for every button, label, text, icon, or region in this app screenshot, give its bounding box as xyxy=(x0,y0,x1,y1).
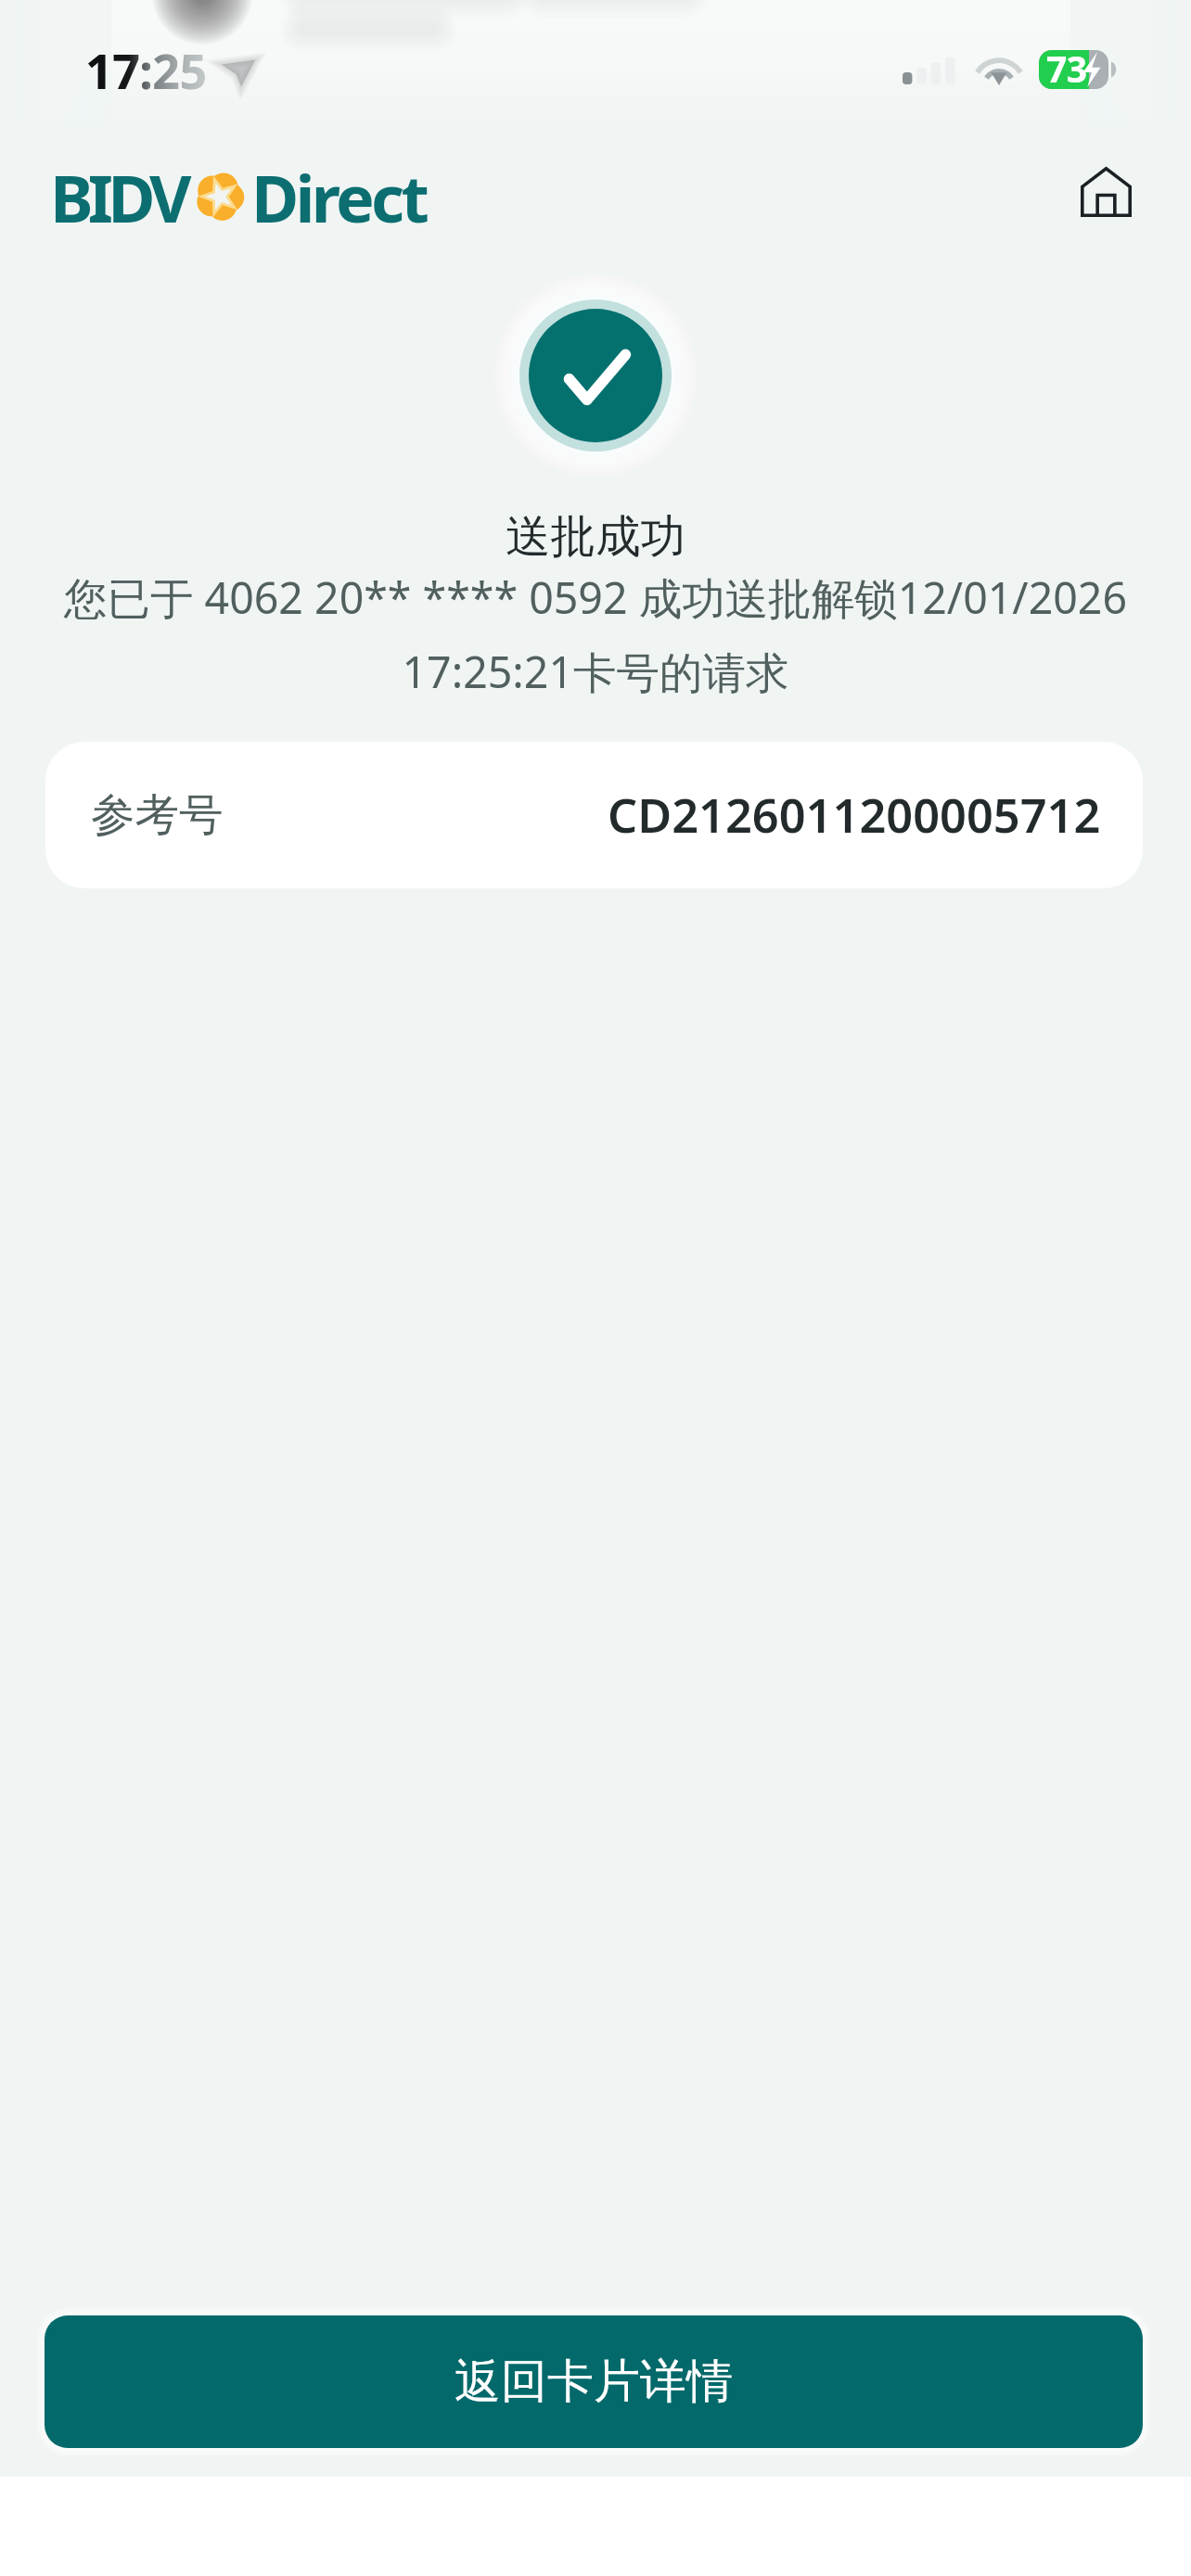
button[interactable]: 参考号 xyxy=(45,742,1143,888)
staticText: 参考号 xyxy=(91,787,224,843)
button[interactable]: Home xyxy=(1062,148,1149,236)
staticText: 您已于 4062 20** **** 0592 成功送批解锁12/01/2026… xyxy=(48,567,1143,701)
button[interactable]: 返回卡片详情 xyxy=(45,2315,1143,2448)
staticText: 17:25 xyxy=(85,37,207,103)
staticText: CD2126011200005712 xyxy=(608,783,1101,847)
staticText: 返回卡片详情 xyxy=(455,2353,733,2411)
staticText: Direct xyxy=(251,153,427,241)
staticText: 送批成功 xyxy=(0,508,1191,565)
staticText: BIDV xyxy=(50,153,186,241)
staticText: 73 xyxy=(1046,44,1087,93)
